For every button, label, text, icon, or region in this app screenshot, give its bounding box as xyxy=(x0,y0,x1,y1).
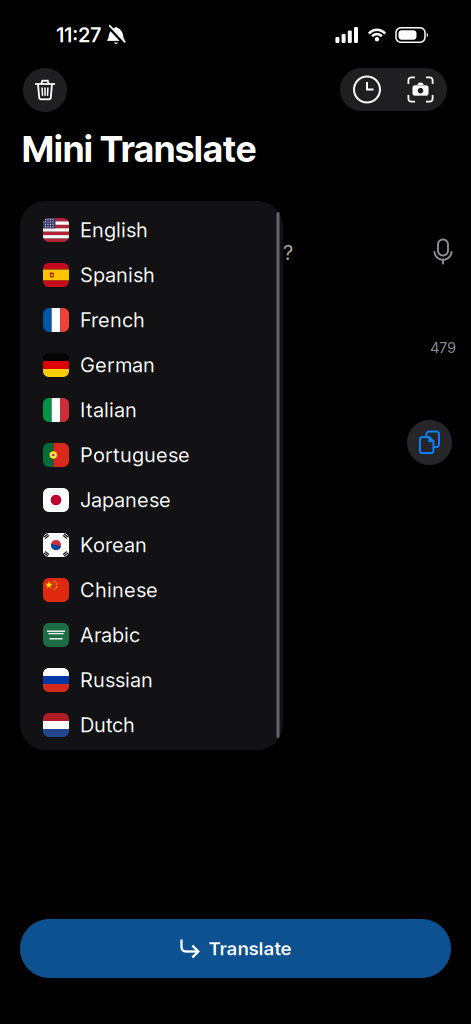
button[interactable]: Arabic xyxy=(20,612,283,657)
button[interactable]: Italian xyxy=(20,387,283,432)
button[interactable]: English xyxy=(20,207,283,252)
staticText: Mini Translate xyxy=(22,127,256,171)
button[interactable]: Camera translate xyxy=(394,68,447,111)
button[interactable]: Clear text xyxy=(23,68,67,112)
staticText: 479 xyxy=(430,339,456,356)
staticText: ? xyxy=(283,241,293,265)
staticText: Translate xyxy=(208,937,291,959)
staticText: English xyxy=(80,218,148,242)
staticText: Chinese xyxy=(80,578,158,602)
staticText: Italian xyxy=(80,398,137,422)
button[interactable]: Translate xyxy=(20,919,451,978)
button[interactable]: Korean xyxy=(20,522,283,567)
button[interactable]: Spanish xyxy=(20,252,283,297)
staticText: Portuguese xyxy=(80,443,190,467)
button[interactable]: Japanese xyxy=(20,477,283,522)
staticText: German xyxy=(80,353,155,377)
button[interactable]: Copy translation xyxy=(407,420,452,465)
button[interactable]: French xyxy=(20,297,283,342)
staticText: 11:27 xyxy=(56,23,101,47)
staticText: Japanese xyxy=(80,488,171,512)
button[interactable]: Chinese xyxy=(20,567,283,612)
staticText: French xyxy=(80,308,145,332)
button[interactable]: Dictate xyxy=(432,239,454,265)
staticText: Korean xyxy=(80,533,147,557)
button[interactable]: Dutch xyxy=(20,702,283,747)
staticText: Russian xyxy=(80,668,153,692)
staticText: Arabic xyxy=(80,623,140,647)
button[interactable]: German xyxy=(20,342,283,387)
button[interactable]: Russian xyxy=(20,657,283,702)
button[interactable]: History xyxy=(340,68,394,111)
button[interactable]: Portuguese xyxy=(20,432,283,477)
staticText: Spanish xyxy=(80,263,155,287)
staticText: Dutch xyxy=(80,713,135,737)
